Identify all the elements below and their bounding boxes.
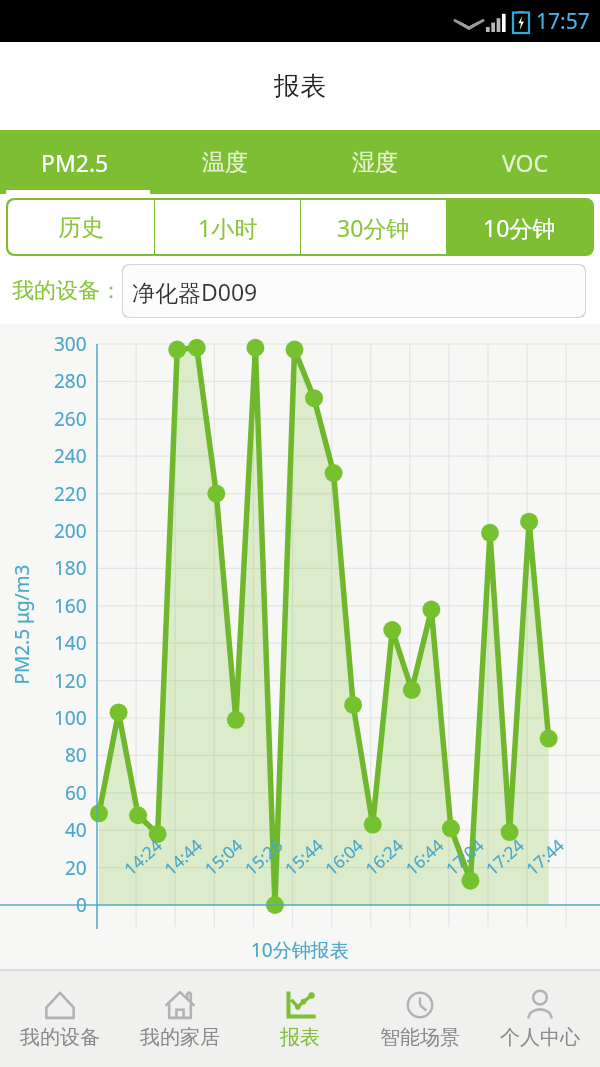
button[interactable]: 报表 [240,970,360,1067]
button[interactable]: VOC [450,130,600,194]
staticText: VOC [502,147,549,178]
button[interactable]: 10分钟 [447,200,592,254]
staticText: 我的设备： [12,277,122,305]
staticText: 个人中心 [500,1025,580,1050]
staticText: 1小时 [198,212,258,243]
button[interactable]: 我的家居 [120,970,240,1067]
button[interactable]: 我的设备 [0,970,120,1067]
button[interactable]: 30分钟 [301,200,446,254]
staticText: 17:57 [536,7,590,36]
staticText: 净化器D009 [132,276,258,307]
staticText: 智能场景 [380,1025,460,1050]
button[interactable]: 历史 [8,200,154,254]
staticText: 我的设备 [20,1025,100,1050]
staticText: 报表 [274,70,326,103]
button[interactable]: PM2.5 [0,130,150,194]
staticText: 温度 [202,148,248,177]
button[interactable]: 智能场景 [360,970,480,1067]
staticText: 历史 [58,213,104,242]
staticText: 我的家居 [140,1025,220,1050]
button[interactable]: 湿度 [300,130,450,194]
button[interactable]: 温度 [150,130,300,194]
staticText: PM2.5 [41,147,109,178]
button[interactable]: 1小时 [155,200,300,254]
staticText: 30分钟 [337,212,410,243]
staticText: 湿度 [352,148,398,177]
staticText: 报表 [280,1025,320,1050]
button[interactable]: 个人中心 [480,970,600,1067]
button[interactable]: 净化器D009 [122,264,586,318]
staticText: 10分钟 [483,212,556,243]
